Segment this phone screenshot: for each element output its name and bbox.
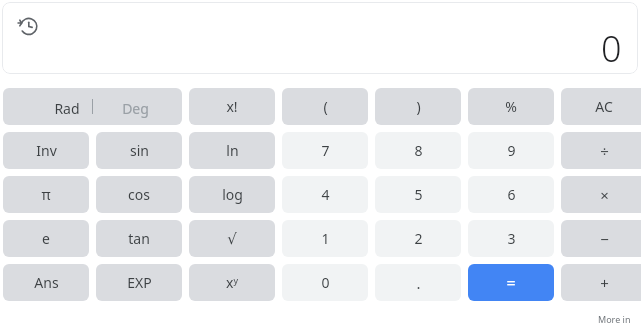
button[interactable]: More in	[598, 313, 638, 324]
staticText: e	[42, 229, 50, 248]
staticText: −	[600, 229, 609, 249]
button[interactable]: 4	[282, 176, 368, 213]
staticText: π	[41, 185, 51, 204]
staticText: 1	[321, 229, 330, 248]
staticText: sin	[130, 141, 149, 160]
staticText: 3	[507, 229, 516, 248]
staticText: log	[222, 185, 243, 204]
staticText: cos	[128, 185, 150, 204]
staticText: 2	[414, 229, 423, 248]
button[interactable]: 3	[468, 220, 554, 257]
staticText: ÷	[600, 141, 609, 161]
staticText: Rad	[54, 99, 80, 118]
staticText: 0	[601, 24, 622, 70]
button[interactable]: %	[468, 88, 554, 125]
staticText: 5	[414, 185, 423, 204]
button[interactable]: −	[561, 220, 641, 257]
button[interactable]: 9	[468, 132, 554, 169]
staticText: Deg	[122, 99, 149, 118]
button[interactable]: Inv	[3, 132, 89, 169]
button[interactable]: )	[375, 88, 461, 125]
button[interactable]: √	[189, 220, 275, 257]
button[interactable]: EXP	[96, 264, 182, 301]
button[interactable]: x to the power of y	[189, 264, 275, 301]
button[interactable]: ln	[189, 132, 275, 169]
button[interactable]: =	[468, 264, 554, 301]
button[interactable]: 1	[282, 220, 368, 257]
button[interactable]: e	[3, 220, 89, 257]
button[interactable]: π	[3, 176, 89, 213]
button[interactable]: Ans	[3, 264, 89, 301]
button[interactable]: tan	[96, 220, 182, 257]
staticText: )	[416, 97, 421, 116]
button[interactable]: History	[14, 12, 42, 40]
staticText: 7	[321, 141, 330, 160]
button[interactable]: cos	[96, 176, 182, 213]
staticText: .	[416, 273, 421, 293]
button[interactable]: ×	[561, 176, 641, 213]
button[interactable]: sin	[96, 132, 182, 169]
button[interactable]: +	[561, 264, 641, 301]
staticText: 6	[507, 185, 516, 204]
button[interactable]: 8	[375, 132, 461, 169]
button[interactable]: 7	[282, 132, 368, 169]
button[interactable]: x!	[189, 88, 275, 125]
staticText: AC	[595, 97, 613, 116]
button[interactable]: 5	[375, 176, 461, 213]
staticText: More in	[598, 313, 631, 324]
staticText: 8	[414, 141, 423, 160]
button[interactable]: Rad or Deg	[3, 88, 182, 125]
staticText: 4	[321, 185, 330, 204]
staticText: 0	[321, 273, 330, 292]
staticText: Ans	[34, 273, 59, 292]
button[interactable]: 6	[468, 176, 554, 213]
staticText: ×	[600, 185, 609, 205]
button[interactable]: 2	[375, 220, 461, 257]
button[interactable]: .	[375, 264, 461, 301]
staticText: ln	[226, 141, 239, 160]
staticText: 9	[507, 141, 516, 160]
button[interactable]: 0	[282, 264, 368, 301]
staticText: EXP	[127, 273, 152, 292]
button[interactable]: log	[189, 176, 275, 213]
button[interactable]: ÷	[561, 132, 641, 169]
staticText: (	[323, 97, 328, 116]
button[interactable]: AC	[561, 88, 641, 125]
staticText: xy	[226, 273, 238, 292]
staticText: √	[227, 230, 237, 247]
staticText: +	[600, 273, 609, 293]
button[interactable]: (	[282, 88, 368, 125]
staticText: x!	[226, 97, 238, 116]
staticText: Inv	[36, 141, 57, 160]
staticText: tan	[128, 229, 150, 248]
staticText: %	[505, 97, 517, 116]
staticText: =	[506, 272, 516, 294]
